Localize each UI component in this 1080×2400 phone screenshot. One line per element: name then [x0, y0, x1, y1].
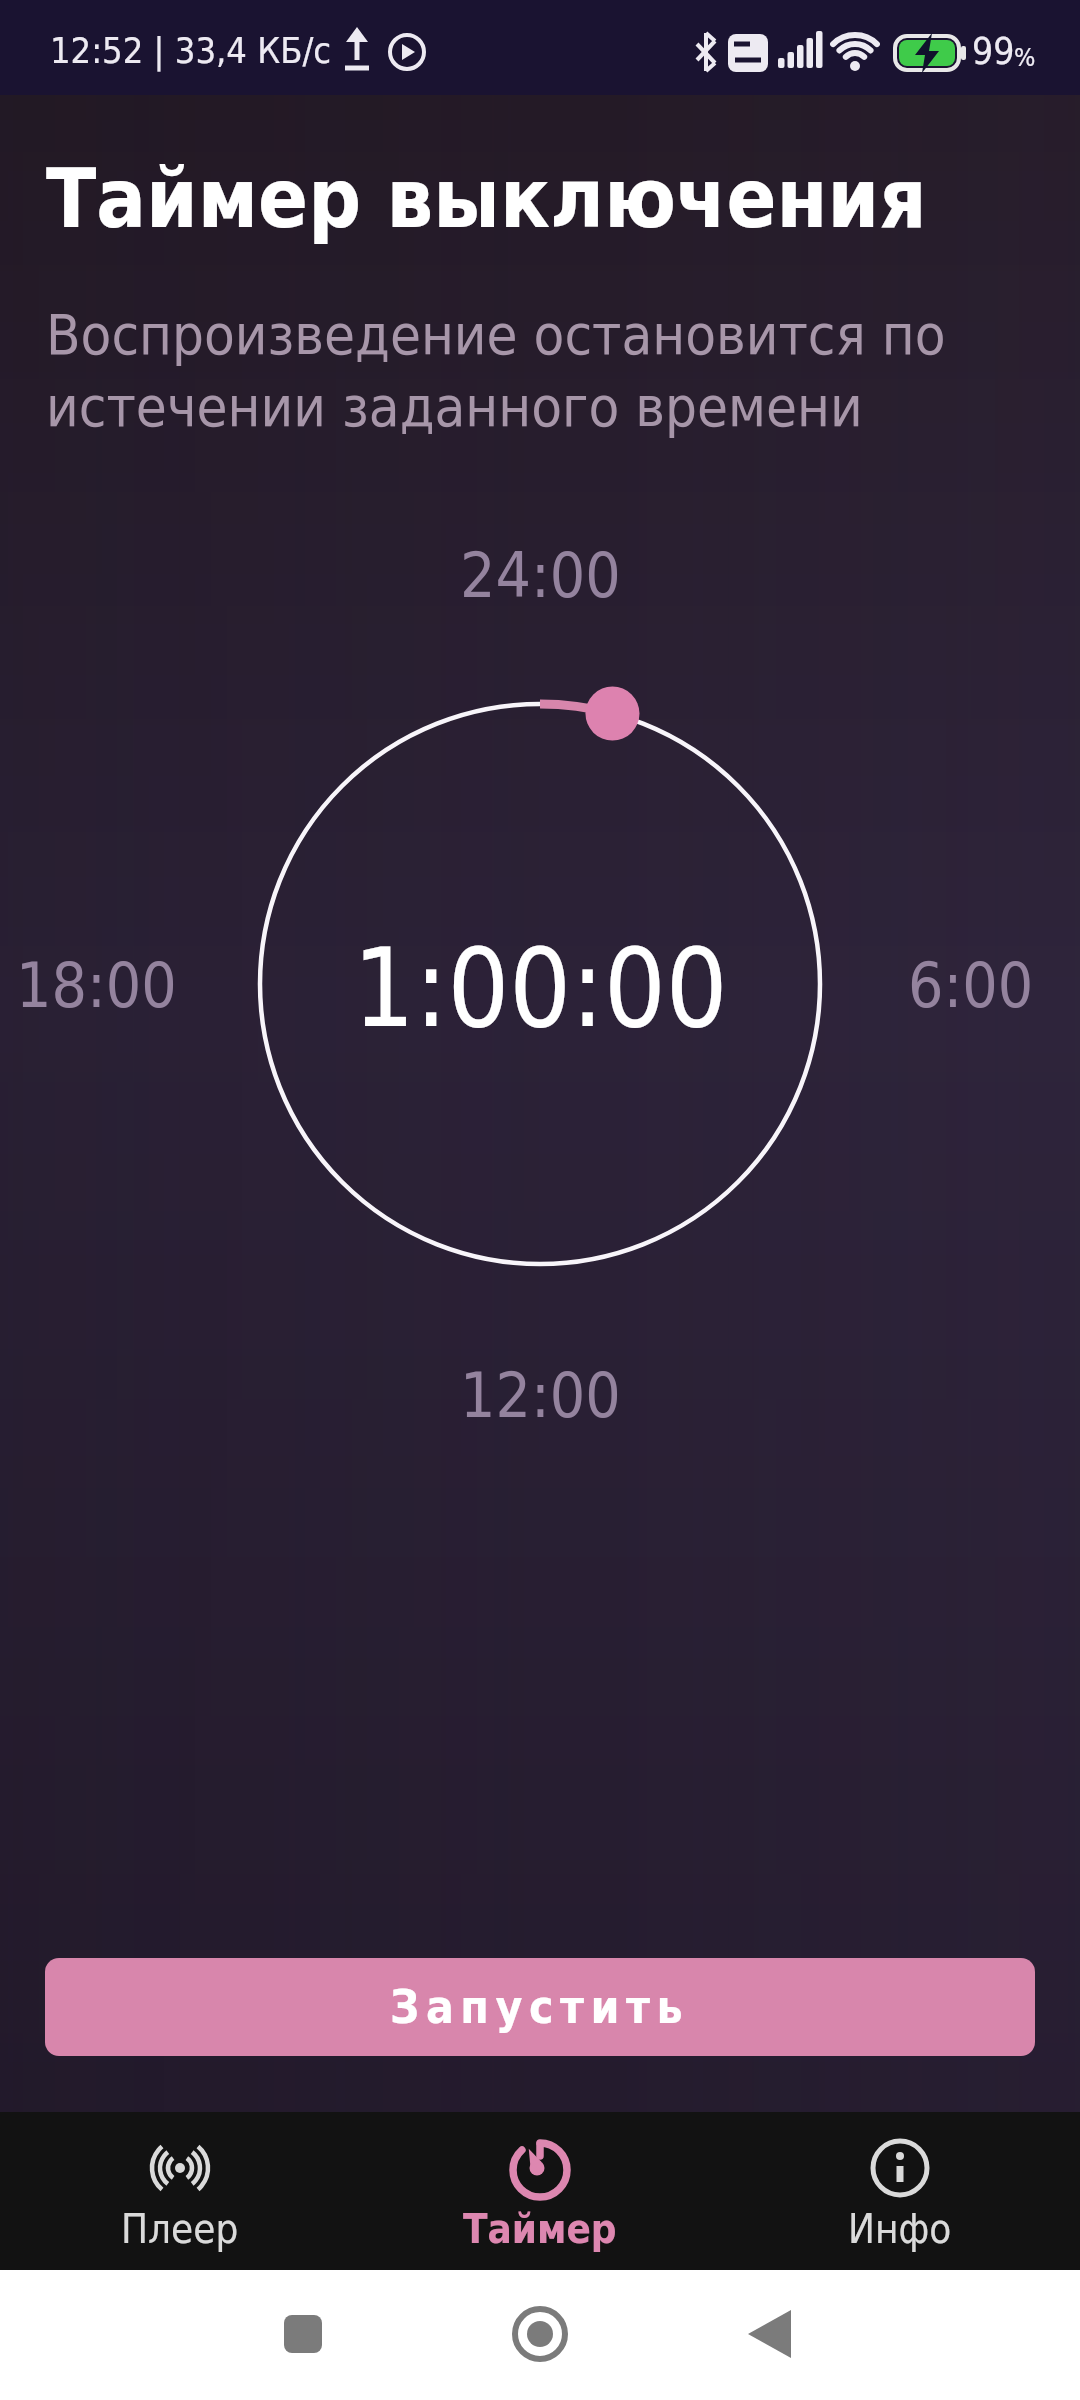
staticText: 1:00:00: [353, 926, 728, 1052]
button[interactable]: Запустить: [45, 1958, 1035, 2056]
button[interactable]: [0, 2270, 1080, 2400]
button[interactable]: Плеер: [0, 2112, 360, 2270]
staticText: 18:00: [16, 949, 177, 1021]
staticText: Воспроизведение остановится по истечении…: [46, 302, 946, 440]
staticText: Таймер выключения: [46, 151, 927, 246]
button[interactable]: Инфо: [720, 2112, 1080, 2270]
staticText: Запустить: [390, 1980, 690, 2034]
staticText: 6:00: [908, 949, 1034, 1021]
staticText: 99: [972, 30, 1015, 73]
staticText: Таймер: [463, 2206, 617, 2253]
staticText: Инфо: [848, 2206, 952, 2253]
staticText: 12:52 | 33,4 КБ/с: [50, 30, 332, 72]
staticText: Плеер: [121, 2206, 239, 2253]
staticText: 24:00: [460, 539, 621, 611]
button[interactable]: Таймер: [360, 2112, 720, 2270]
staticText: %: [1014, 43, 1036, 72]
staticText: 12:00: [460, 1359, 621, 1431]
